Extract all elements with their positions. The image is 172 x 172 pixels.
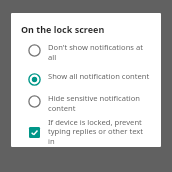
staticText: Don't show notifications at all	[48, 42, 151, 62]
staticText: If device is locked, prevent typing repl…	[48, 117, 151, 147]
button[interactable]: If device is locked, prevent typing repl…	[21, 115, 151, 147]
button[interactable]: Don't show notifications at all	[21, 35, 151, 64]
button[interactable]: Show all notification content	[21, 64, 151, 86]
button[interactable]: Hide sensitive notification content	[21, 86, 151, 115]
staticText: On the lock screen	[21, 23, 105, 35]
staticText: Hide sensitive notification content	[48, 93, 140, 113]
staticText: Show all notification content	[48, 71, 150, 81]
